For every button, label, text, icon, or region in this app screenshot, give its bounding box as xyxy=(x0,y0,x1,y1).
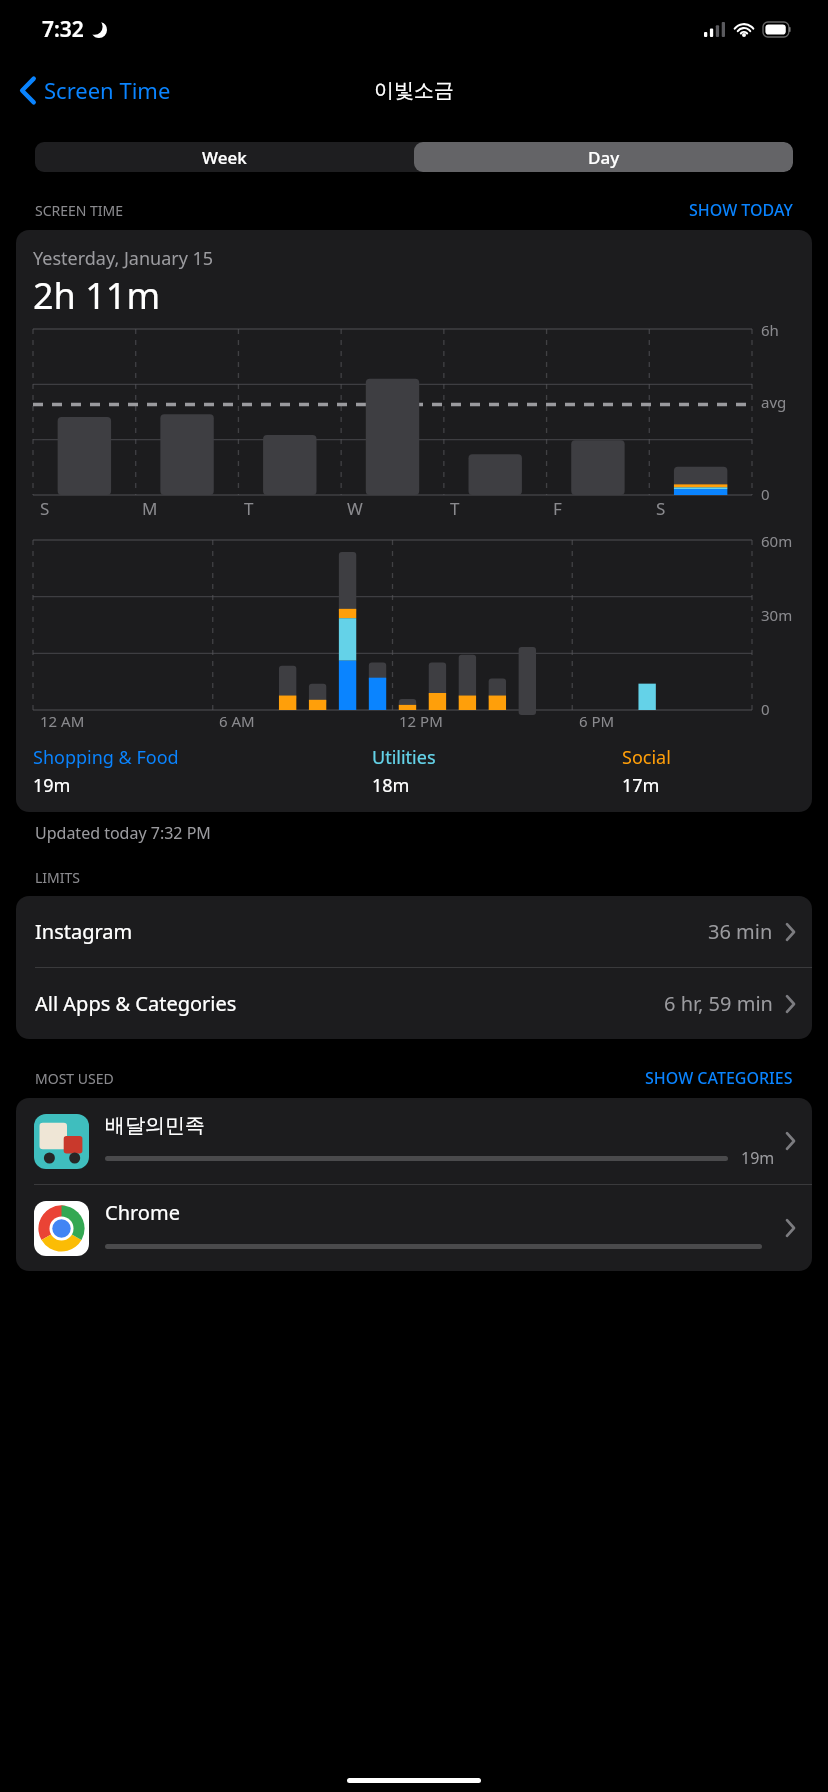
other: Chrome app xyxy=(34,1201,89,1256)
staticText: 12 PM xyxy=(399,711,443,731)
staticText: Week xyxy=(202,146,247,169)
staticText: 7:32 xyxy=(42,15,84,44)
staticText: avg xyxy=(761,392,787,412)
staticText: 6h xyxy=(761,320,779,340)
staticText: Day xyxy=(588,146,620,169)
staticText: 6 hr, 59 min xyxy=(664,990,773,1017)
staticText: T xyxy=(244,497,254,520)
button[interactable]: SHOW TODAY xyxy=(689,199,793,221)
staticText: 배달의민족 xyxy=(105,1113,205,1138)
staticText: 19m xyxy=(33,773,71,798)
staticText: M xyxy=(142,497,158,520)
button[interactable]: SHOW CATEGORIES xyxy=(645,1067,793,1089)
staticText: T xyxy=(450,497,460,520)
staticText: S xyxy=(40,497,50,520)
button[interactable]: Week xyxy=(35,142,414,172)
button[interactable]: All Apps & Categories xyxy=(16,968,812,1039)
staticText: Chrome xyxy=(105,1199,180,1226)
staticText: 12 AM xyxy=(40,711,85,731)
staticText: 0 xyxy=(761,484,770,504)
button[interactable]: Yesterday, January 15 xyxy=(16,230,812,812)
staticText: 19m xyxy=(741,1147,775,1169)
staticText: F xyxy=(553,497,562,520)
button[interactable]: Day xyxy=(414,142,793,172)
button[interactable]: Chrome app xyxy=(16,1185,812,1271)
staticText: Screen Time xyxy=(44,75,171,105)
staticText: Instagram xyxy=(35,918,133,945)
button[interactable]: Instagram xyxy=(16,896,812,968)
staticText: S xyxy=(656,497,666,520)
staticText: W xyxy=(347,497,363,520)
button[interactable]: Screen Time xyxy=(14,67,177,113)
other: 배달의민족 app xyxy=(34,1114,89,1169)
staticText: SHOW TODAY xyxy=(689,199,793,221)
staticText: 0 xyxy=(761,699,770,719)
staticText: 6 AM xyxy=(219,711,255,731)
staticText: Utilities xyxy=(372,745,436,770)
staticText: 2h 11m xyxy=(33,271,161,320)
staticText: Social xyxy=(622,745,671,770)
staticText: Updated today 7:32 PM xyxy=(35,822,211,844)
staticText: Yesterday, January 15 xyxy=(33,246,214,271)
staticText: All Apps & Categories xyxy=(35,990,237,1017)
staticText: Shopping & Food xyxy=(33,745,179,770)
staticText: SHOW CATEGORIES xyxy=(645,1067,793,1089)
staticText: 36 min xyxy=(708,918,773,945)
button[interactable]: 배달의민족 app xyxy=(16,1098,812,1185)
staticText: LIMITS xyxy=(35,868,80,887)
staticText: 6 PM xyxy=(579,711,615,731)
staticText: SCREEN TIME xyxy=(35,201,124,220)
staticText: MOST USED xyxy=(35,1069,114,1088)
staticText: 30m xyxy=(761,605,793,625)
staticText: 이빛소금 xyxy=(374,78,454,103)
staticText: 17m xyxy=(622,773,660,798)
staticText: 18m xyxy=(372,773,410,798)
staticText: 60m xyxy=(761,531,793,551)
